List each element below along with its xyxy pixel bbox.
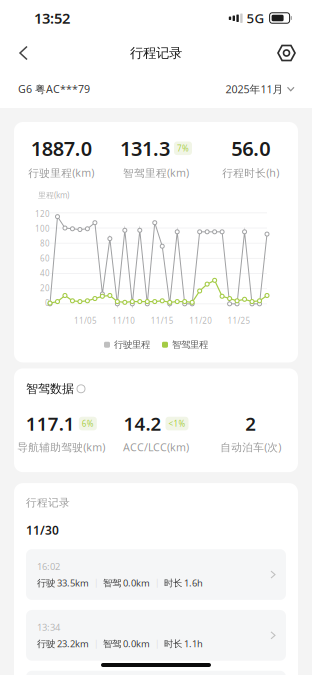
button[interactable]: Back (0, 37, 43, 68)
staticText: 行程记录 (26, 496, 70, 509)
staticText: 智驾 0.0km (103, 577, 150, 589)
staticText: ACC/LCC(km) (123, 440, 189, 454)
staticText: 7% (177, 143, 189, 154)
staticText: 56.0 (231, 135, 270, 162)
staticText: 100 (35, 223, 50, 234)
staticText: 行程记录 (130, 45, 182, 61)
staticText: 时长 1.1h (164, 637, 203, 650)
button[interactable]: 16:02 (26, 549, 286, 600)
staticText: 120 (35, 208, 50, 219)
staticText: 导航辅助驾驶(km) (17, 440, 105, 454)
staticText: 16:02 (37, 560, 60, 573)
staticText: 行驶里程 (114, 339, 150, 350)
staticText: | (155, 577, 159, 588)
staticText: 11/10 (112, 315, 135, 326)
staticText: 时长 1.6h (164, 577, 203, 589)
staticText: | (94, 577, 98, 588)
staticText: 2 (245, 411, 256, 436)
staticText: 40 (40, 268, 50, 278)
staticText: 11/30 (26, 522, 59, 538)
staticText: 1887.0 (31, 135, 92, 162)
staticText: 6% (82, 418, 94, 429)
staticText: | (94, 638, 98, 649)
staticText: 里程(km) (38, 190, 69, 200)
staticText: 行驶里程(km) (28, 166, 94, 180)
staticText: 智驾 0.0km (103, 637, 150, 650)
staticText: 行程时长(h) (222, 166, 279, 180)
staticText: 20 (40, 283, 50, 293)
staticText: <1% (168, 418, 185, 429)
staticText: 自动泊车(次) (220, 440, 281, 454)
staticText: 13:52 (34, 8, 70, 28)
staticText: 行驶 23.2km (37, 637, 89, 650)
staticText: 60 (40, 253, 50, 264)
staticText: 11/05 (74, 315, 97, 326)
staticText: | (155, 638, 159, 649)
staticText: 0 (45, 298, 50, 308)
staticText: G6 粤AC***79 (18, 82, 90, 96)
staticText: 2025年11月 (225, 82, 283, 96)
staticText: 13:34 (37, 621, 60, 633)
staticText: 11/20 (189, 315, 212, 326)
staticText: 智驾里程 (172, 339, 208, 350)
staticText: 智驾里程(km) (123, 166, 189, 180)
button[interactable]: 13:34 (26, 610, 286, 661)
staticText: 行驶 33.5km (37, 577, 89, 589)
staticText: 11/15 (151, 315, 174, 326)
staticText: 80 (40, 238, 50, 249)
staticText: 5G (247, 9, 265, 27)
staticText: 131.3 (120, 135, 170, 162)
staticText: 11/25 (228, 315, 251, 326)
button[interactable]: Settings (264, 36, 312, 69)
staticText: 14.2 (123, 411, 161, 436)
button[interactable]: 2025年11月 (225, 82, 294, 96)
staticText: 智驾数据 (26, 381, 74, 396)
staticText: 117.1 (26, 411, 75, 436)
